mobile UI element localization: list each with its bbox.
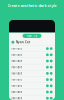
button[interactable]: Nyan Cat [9,39,55,45]
staticText: row label [11,78,22,81]
button[interactable]: row label [9,46,55,52]
staticText: row label [11,90,22,94]
button[interactable]: row label [9,83,55,89]
staticText: row label [11,72,22,75]
staticText: row label [11,84,22,88]
staticText: row label [11,65,22,69]
button[interactable]: row label [9,64,55,70]
button[interactable]: row label [9,77,55,83]
staticText: row label [11,96,22,100]
button[interactable]: row label [9,58,55,64]
staticText: Nyan Cat [26,34,37,38]
staticText: Nyan Cat [16,40,30,44]
button[interactable]: Nyan Cat [9,33,55,39]
staticText: row label [11,53,22,57]
staticText: row label [11,47,22,50]
button[interactable]: row label [9,52,55,58]
button[interactable]: row label [9,95,55,100]
button[interactable]: row label [9,89,55,95]
staticText: row label [11,59,22,63]
button[interactable]: row label [9,70,55,77]
staticText: Create aesthetic dark style [7,3,56,8]
